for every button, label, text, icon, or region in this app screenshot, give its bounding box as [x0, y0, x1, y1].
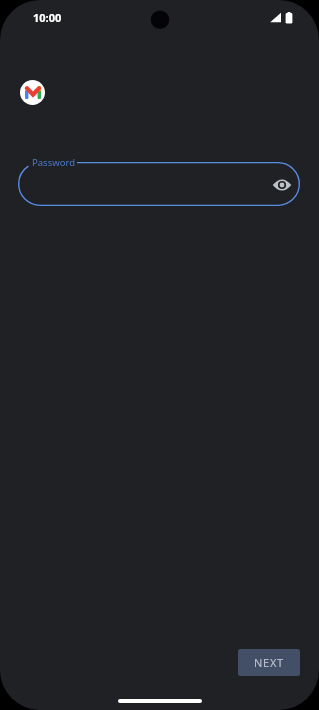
button[interactable]: Show password	[272, 175, 292, 195]
button[interactable]	[18, 162, 300, 206]
staticText: NEXT	[254, 655, 284, 670]
button[interactable]: NEXT	[238, 649, 300, 676]
staticText: Password	[32, 156, 75, 169]
staticText: 10:00	[33, 10, 62, 25]
